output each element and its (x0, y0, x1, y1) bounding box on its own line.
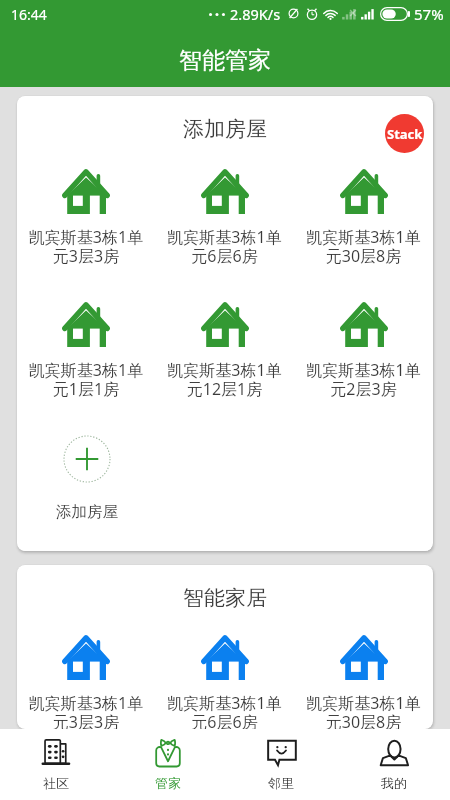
staticText: 2.89K/s (230, 4, 281, 24)
staticText: 凯宾斯基3栋1单元3层3房 (24, 226, 148, 267)
button[interactable]: 凯宾斯基3栋1单元2层3房 (294, 302, 433, 400)
staticText: 凯宾斯基3栋1单元2层3房 (301, 359, 426, 400)
button[interactable]: Butler (112, 729, 224, 800)
staticText: 凯宾斯基3栋1单元12层1房 (162, 359, 287, 400)
button[interactable]: Profile (337, 729, 450, 800)
staticText: 凯宾斯基3栋1单元30层8房 (301, 226, 426, 267)
staticText: 凯宾斯基3栋1单元3层3房 (24, 692, 148, 729)
staticText: 凯宾斯基3栋1单元1层1房 (24, 359, 148, 400)
staticText: 管家 (155, 775, 181, 791)
button[interactable]: Neighbors (224, 729, 337, 800)
staticText: 16:44 (11, 5, 47, 24)
button[interactable]: 凯宾斯基3栋1单元6层6房 (155, 169, 294, 267)
staticText: Stack (387, 125, 423, 143)
staticText: 我的 (381, 775, 407, 791)
button[interactable]: 凯宾斯基3栋1单元3层3房 (17, 169, 155, 267)
button[interactable]: Add house (17, 435, 156, 522)
other: Add house (63, 435, 111, 483)
button[interactable]: 凯宾斯基3栋1单元6层6房 (155, 635, 294, 729)
staticText: 凯宾斯基3栋1单元6层6房 (162, 692, 287, 729)
button[interactable]: Community (0, 729, 112, 800)
button[interactable]: 凯宾斯基3栋1单元3层3房 (17, 635, 155, 729)
staticText: 凯宾斯基3栋1单元6层6房 (162, 226, 287, 267)
staticText: 社区 (43, 775, 69, 791)
staticText: 智能家居 (17, 585, 433, 611)
button[interactable]: 凯宾斯基3栋1单元12层1房 (155, 302, 294, 400)
staticText: 智能管家 (179, 46, 271, 75)
button[interactable]: 凯宾斯基3栋1单元30层8房 (294, 169, 433, 267)
button[interactable]: 凯宾斯基3栋1单元30层8房 (294, 635, 433, 729)
staticText: 添加房屋 (56, 502, 118, 522)
staticText: 添加房屋 (17, 116, 433, 142)
button[interactable]: 凯宾斯基3栋1单元1层1房 (17, 302, 155, 400)
button[interactable]: Stack (385, 114, 424, 153)
staticText: 57% (414, 4, 444, 24)
staticText: 凯宾斯基3栋1单元30层8房 (301, 692, 426, 729)
staticText: 邻里 (268, 775, 294, 791)
